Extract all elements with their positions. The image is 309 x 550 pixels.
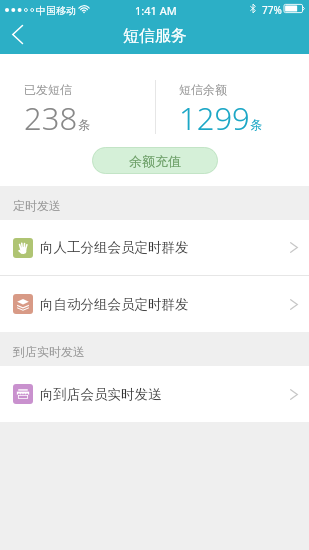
staticText: 向到店会员实时发送: [40, 386, 162, 403]
staticText: 238: [24, 97, 78, 139]
staticText: 定时发送: [13, 198, 61, 213]
staticText: 向人工分组会员定时群发: [40, 239, 189, 256]
staticText: 中国移动: [36, 4, 76, 17]
button[interactable]: 余额充值: [92, 147, 218, 174]
staticText: 条: [250, 117, 262, 132]
button[interactable]: Back: [0, 20, 38, 54]
staticText: 1:41 AM: [135, 3, 177, 18]
staticText: 余额充值: [129, 153, 181, 169]
staticText: 77%: [262, 3, 282, 17]
staticText: 1299: [179, 97, 250, 139]
staticText: 短信余额: [179, 82, 227, 97]
staticText: 向自动分组会员定时群发: [40, 296, 189, 313]
staticText: 已发短信: [24, 82, 72, 97]
button[interactable]: 向到店会员实时发送: [0, 366, 309, 422]
staticText: 短信服务: [123, 26, 187, 46]
staticText: 到店实时发送: [13, 344, 85, 359]
button[interactable]: 向自动分组会员定时群发: [0, 276, 309, 332]
staticText: 条: [78, 117, 90, 132]
button[interactable]: 向人工分组会员定时群发: [0, 220, 309, 275]
